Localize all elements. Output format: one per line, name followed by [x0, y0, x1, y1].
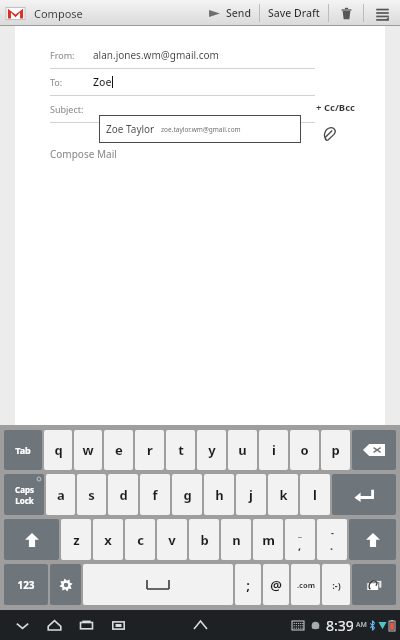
- button[interactable]: z: [61, 519, 91, 560]
- button[interactable]: p: [321, 430, 350, 470]
- staticText: .: [330, 538, 334, 553]
- button[interactable]: ;: [235, 564, 261, 605]
- button[interactable]: _: [285, 519, 315, 560]
- button[interactable]: Send: [200, 0, 259, 26]
- staticText: f: [152, 486, 158, 504]
- staticText: k: [279, 486, 288, 504]
- button[interactable]: bksp: [352, 430, 396, 470]
- button[interactable]: l: [300, 474, 330, 515]
- button[interactable]: -: [317, 519, 347, 560]
- button[interactable]: attach: [352, 564, 396, 605]
- button[interactable]: enter: [332, 474, 396, 515]
- button[interactable]: :-): [322, 564, 350, 605]
- staticText: i: [272, 441, 276, 459]
- staticText: a: [57, 486, 65, 504]
- button[interactable]: + Cc/Bcc: [313, 98, 358, 117]
- button[interactable]: Attach file: [318, 122, 340, 144]
- staticText: _: [298, 526, 302, 538]
- staticText: t: [178, 441, 184, 459]
- button[interactable]: w: [74, 430, 102, 470]
- staticText: l: [313, 486, 317, 504]
- staticText: + Cc/Bcc: [316, 101, 355, 114]
- button[interactable]: .com: [291, 564, 320, 605]
- button[interactable]: Gmail: [4, 2, 26, 24]
- button[interactable]: r: [135, 430, 164, 470]
- staticText: g: [183, 486, 192, 504]
- button[interactable]: Tab: [4, 430, 42, 470]
- button[interactable]: Zoe Taylor: [99, 115, 301, 143]
- button[interactable]: o: [290, 430, 319, 470]
- staticText: ;: [246, 576, 250, 594]
- staticText: n: [232, 531, 241, 549]
- staticText: To:: [50, 76, 93, 88]
- button[interactable]: u: [228, 430, 257, 470]
- button[interactable]: Discard: [329, 0, 363, 26]
- button[interactable]: m: [253, 519, 283, 560]
- staticText: s: [88, 486, 95, 504]
- staticText: Tab: [15, 444, 31, 456]
- staticText: p: [331, 441, 340, 459]
- staticText: q: [54, 441, 63, 459]
- button[interactable]: Back: [6, 610, 38, 640]
- staticText: ,: [298, 538, 302, 553]
- button[interactable]: h: [204, 474, 234, 515]
- staticText: Subject:: [50, 103, 93, 115]
- button[interactable]: Compose Mail: [15, 141, 385, 181]
- button[interactable]: f: [140, 474, 170, 515]
- button[interactable]: v: [157, 519, 187, 560]
- staticText: u: [238, 441, 247, 459]
- staticText: z: [73, 531, 80, 549]
- staticText: e: [115, 441, 123, 459]
- button[interactable]: n: [221, 519, 251, 560]
- button[interactable]: s: [77, 474, 106, 515]
- button[interactable]: k: [268, 474, 298, 515]
- button[interactable]: Home: [38, 610, 70, 640]
- button[interactable]: q: [44, 430, 72, 470]
- button[interactable]: t: [166, 430, 195, 470]
- button[interactable]: Subject:: [15, 96, 385, 123]
- button[interactable]: shift: [4, 519, 59, 560]
- staticText: zoe.taylor.wm@gmail.com: [161, 125, 241, 134]
- button[interactable]: To:: [15, 69, 385, 96]
- staticText: alan.jones.wm@gmail.com: [93, 48, 219, 62]
- button[interactable]: space: [83, 564, 233, 605]
- button[interactable]: Recents: [70, 610, 102, 640]
- button[interactable]: j: [236, 474, 266, 515]
- button[interactable]: d: [108, 474, 138, 515]
- button[interactable]: c: [125, 519, 155, 560]
- button[interactable]: From:: [15, 42, 385, 69]
- button[interactable]: Full screen: [102, 610, 134, 640]
- staticText: 8:39: [326, 616, 354, 635]
- staticText: Zoe Taylor: [106, 122, 155, 136]
- button[interactable]: shift: [349, 519, 396, 560]
- staticText: .com: [297, 580, 315, 590]
- staticText: d: [119, 486, 128, 504]
- staticText: o: [300, 441, 309, 459]
- button[interactable]: b: [189, 519, 219, 560]
- button[interactable]: y: [197, 430, 226, 470]
- button[interactable]: a: [46, 474, 75, 515]
- staticText: :-): [332, 579, 341, 591]
- staticText: y: [208, 441, 216, 459]
- staticText: Save Draft: [268, 6, 320, 20]
- button[interactable]: 123: [4, 564, 48, 605]
- button[interactable]: Save Draft: [260, 0, 328, 26]
- button[interactable]: e: [104, 430, 133, 470]
- staticText: -: [331, 526, 334, 538]
- button[interactable]: Show keyboard: [187, 612, 213, 638]
- button[interactable]: gear: [50, 564, 81, 605]
- staticText: Compose: [34, 6, 83, 21]
- button[interactable]: Caps Lock: [4, 474, 44, 515]
- button[interactable]: x: [93, 519, 123, 560]
- button[interactable]: @: [263, 564, 289, 605]
- button[interactable]: More options: [364, 0, 400, 26]
- staticText: c: [137, 531, 144, 549]
- staticText: w: [82, 441, 94, 459]
- staticText: Send: [226, 6, 251, 20]
- button[interactable]: g: [172, 474, 202, 515]
- staticText: AM: [356, 620, 367, 630]
- button[interactable]: i: [259, 430, 288, 470]
- staticText: x: [104, 531, 112, 549]
- staticText: Caps Lock: [15, 484, 34, 506]
- staticText: m: [262, 531, 275, 549]
